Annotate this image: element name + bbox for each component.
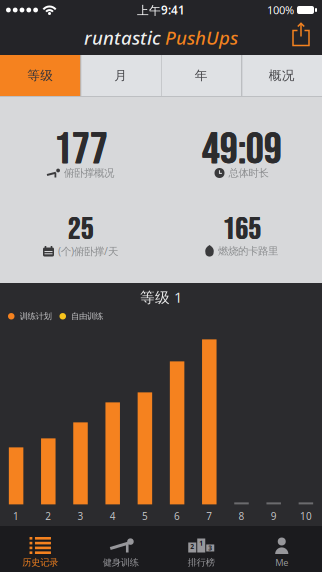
- staticText: 177: [54, 124, 108, 176]
- staticText: PushUps: [165, 25, 238, 50]
- staticText: 健身训练: [103, 557, 139, 568]
- staticText: 训练计划: [19, 311, 51, 322]
- button[interactable]: 等级: [0, 55, 80, 96]
- staticText: 历史记录: [22, 557, 58, 568]
- button[interactable]: 年: [161, 55, 241, 96]
- staticText: 月: [114, 67, 127, 83]
- staticText: 自由训练: [71, 311, 103, 322]
- staticText: 25: [68, 211, 94, 248]
- staticText: 165: [222, 211, 261, 248]
- button[interactable]: 健身训练: [80, 526, 161, 572]
- button[interactable]: 概况: [241, 55, 322, 96]
- staticText: 165: [223, 211, 262, 248]
- button[interactable]: Me: [241, 526, 322, 572]
- staticText: 177: [54, 124, 108, 176]
- staticText: 5: [142, 509, 148, 523]
- staticText: 177: [53, 124, 107, 176]
- staticText: 25: [68, 211, 94, 248]
- button[interactable]: 2: [161, 526, 241, 572]
- staticText: 3: [208, 543, 212, 552]
- staticText: 总体时长: [228, 166, 268, 179]
- staticText: 4: [110, 509, 116, 523]
- staticText: 49:09: [202, 124, 282, 176]
- staticText: 165: [222, 211, 261, 248]
- staticText: 排行榜: [188, 557, 215, 568]
- button[interactable]: 月: [80, 55, 161, 96]
- staticText: runtastic: [84, 25, 161, 50]
- staticText: 9: [271, 509, 277, 523]
- staticText: 3: [77, 509, 83, 523]
- button[interactable]: Share: [290, 25, 322, 49]
- staticText: 6: [174, 509, 180, 523]
- staticText: 概况: [269, 67, 295, 83]
- staticText: 等级 1: [140, 287, 182, 307]
- staticText: 100%: [267, 2, 294, 18]
- staticText: 1: [13, 509, 19, 523]
- staticText: 1: [199, 538, 203, 548]
- staticText: (个)俯卧撑/天: [58, 244, 118, 258]
- staticText: 燃烧的卡路里: [218, 244, 278, 257]
- staticText: 年: [195, 67, 208, 83]
- staticText: 10: [300, 509, 312, 523]
- staticText: 49:09: [202, 124, 282, 176]
- staticText: Me: [275, 556, 288, 569]
- staticText: 8: [238, 509, 244, 523]
- staticText: 上午9:41: [137, 2, 185, 18]
- button[interactable]: 历史记录: [0, 526, 80, 572]
- staticText: 俯卧撑概况: [64, 166, 114, 179]
- staticText: 25: [67, 211, 93, 248]
- staticText: 2: [45, 509, 51, 523]
- staticText: 7: [206, 509, 212, 523]
- staticText: 等级: [27, 67, 53, 83]
- staticText: 2: [190, 542, 194, 551]
- staticText: 49:09: [201, 124, 281, 176]
